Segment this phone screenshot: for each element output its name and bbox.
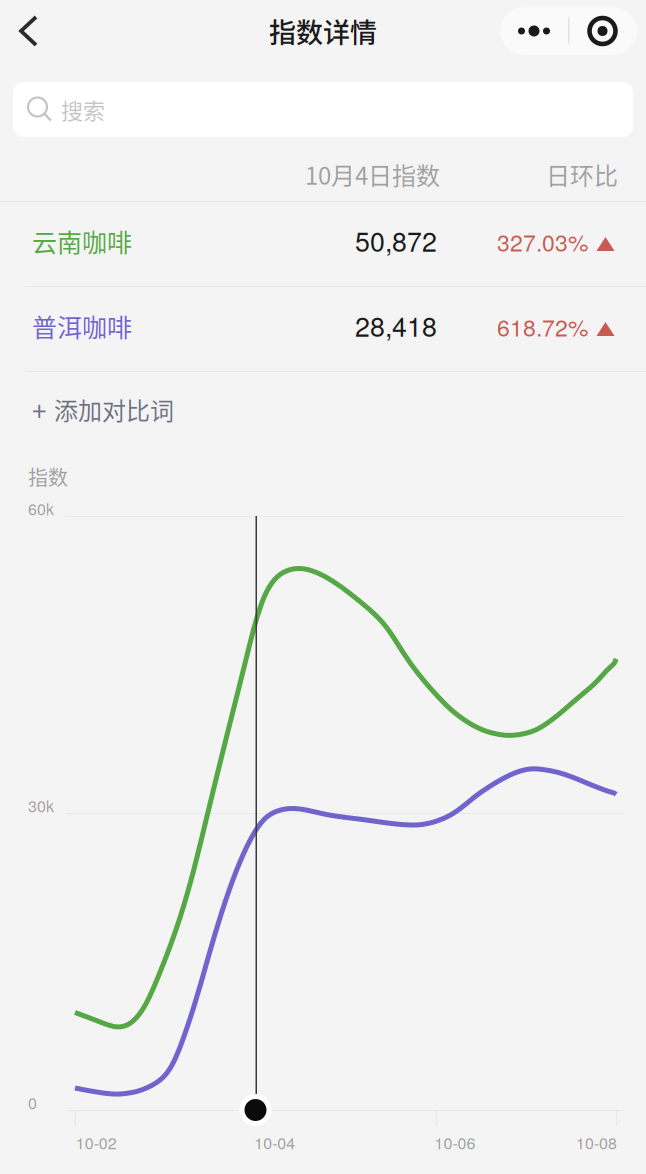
staticText: 30k [28, 794, 54, 817]
staticText: 指数 [28, 462, 68, 491]
button[interactable]: Back [0, 0, 60, 62]
staticText: 327.03% [497, 225, 588, 258]
staticText: 日环比 [546, 157, 618, 192]
staticText: 指数详情 [269, 11, 377, 51]
staticText: 50,872 [355, 221, 437, 259]
staticText: + [32, 391, 46, 429]
staticText: 0 [28, 1091, 37, 1114]
staticText: 云南咖啡 [32, 223, 132, 259]
staticText: 10-06 [435, 1131, 476, 1154]
staticText: 618.72% [497, 310, 588, 343]
button[interactable]: 普洱咖啡 [0, 287, 646, 371]
button[interactable]: More [500, 7, 568, 55]
button[interactable]: + [0, 372, 646, 442]
staticText: 普洱咖啡 [32, 308, 132, 344]
staticText: 60k [28, 497, 54, 520]
staticText: 10月4日指数 [305, 157, 440, 192]
button[interactable]: Close [568, 7, 637, 55]
staticText: 搜索 [61, 94, 105, 125]
button[interactable]: 云南咖啡 [0, 202, 646, 286]
staticText: 添加对比词 [54, 392, 174, 427]
staticText: 28,418 [355, 306, 437, 344]
staticText: 10-02 [76, 1131, 117, 1154]
staticText: 10-08 [576, 1131, 617, 1154]
button[interactable]: 搜索 [13, 82, 633, 137]
staticText: 10-04 [254, 1131, 295, 1154]
